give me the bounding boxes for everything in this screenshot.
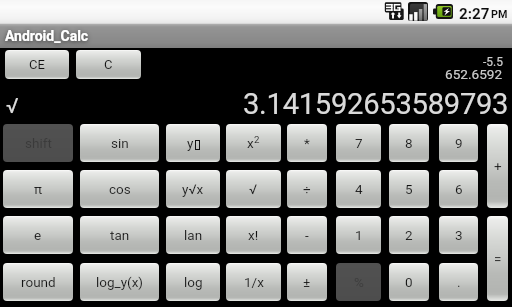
button[interactable]: lan xyxy=(166,216,220,254)
staticText: y√x xyxy=(182,181,204,197)
button[interactable]: y√x xyxy=(166,170,220,208)
button[interactable]: + xyxy=(487,124,508,208)
staticText: - xyxy=(305,227,309,243)
button[interactable]: √ xyxy=(226,170,281,208)
button[interactable]: x! xyxy=(226,216,281,254)
button[interactable]: C xyxy=(76,50,141,79)
staticText: 6 xyxy=(455,181,463,197)
button[interactable]: 9 xyxy=(439,124,478,162)
button[interactable]: ± xyxy=(287,263,327,301)
button[interactable]: 6 xyxy=(439,170,478,208)
button[interactable]: 4 xyxy=(336,170,381,208)
staticText: 3.141592653589793 xyxy=(243,87,509,121)
staticText: e xyxy=(34,227,42,243)
button[interactable]: sin xyxy=(80,124,159,162)
button[interactable]: 1 xyxy=(336,216,381,254)
button[interactable]: 8 xyxy=(389,124,429,162)
staticText: PM xyxy=(491,8,508,21)
staticText: x! xyxy=(248,227,259,243)
staticText: + xyxy=(494,158,502,174)
button[interactable]: y xyxy=(166,124,220,162)
staticText: y xyxy=(187,135,194,151)
other: Signal strength xyxy=(408,2,428,21)
staticText: . xyxy=(457,274,461,290)
button[interactable]: log xyxy=(166,263,220,301)
other: Battery charging xyxy=(433,4,453,19)
button[interactable]: - xyxy=(287,216,327,254)
staticText: lan xyxy=(184,227,203,243)
button[interactable]: 1/x xyxy=(226,263,281,301)
staticText: 1 xyxy=(355,227,363,243)
button[interactable]: 2 xyxy=(389,216,429,254)
button[interactable]: 5 xyxy=(389,170,429,208)
button[interactable]: round xyxy=(3,263,73,301)
staticText: = xyxy=(494,251,502,267)
staticText: * xyxy=(304,135,310,151)
staticText: 7 xyxy=(355,135,363,151)
staticText: 2 xyxy=(254,134,260,145)
button[interactable]: 7 xyxy=(336,124,381,162)
button[interactable]: cos xyxy=(80,170,159,208)
staticText: C xyxy=(104,57,113,72)
staticText: % xyxy=(354,274,364,290)
staticText: -5.5 xyxy=(483,55,503,69)
staticText: tan xyxy=(110,227,130,243)
button[interactable]: x xyxy=(226,124,281,162)
staticText: cos xyxy=(109,181,131,197)
staticText: 1/x xyxy=(244,274,264,290)
button[interactable]: CE xyxy=(5,50,69,79)
staticText: log_y(x) xyxy=(96,274,144,290)
staticText: 4 xyxy=(355,181,363,197)
staticText: Android_Calc xyxy=(5,28,89,44)
button[interactable]: e xyxy=(3,216,73,254)
staticText: sin xyxy=(111,135,129,151)
staticText: CE xyxy=(29,57,45,72)
button[interactable]: π xyxy=(3,170,73,208)
staticText: 2 xyxy=(405,227,413,243)
button[interactable]: shift xyxy=(3,124,73,162)
staticText: 5 xyxy=(405,181,413,197)
staticText: 0 xyxy=(405,274,413,290)
button[interactable]: ÷ xyxy=(287,170,327,208)
button[interactable]: * xyxy=(287,124,327,162)
staticText: x xyxy=(247,135,254,151)
staticText: 2:27 xyxy=(459,5,490,23)
other: 3G mobile data xyxy=(384,1,404,20)
staticText: round xyxy=(21,274,56,290)
button[interactable]: tan xyxy=(80,216,159,254)
staticText: π xyxy=(34,181,43,197)
staticText: 652.6592 xyxy=(445,66,503,82)
staticText: 8 xyxy=(405,135,413,151)
staticText: 3 xyxy=(455,227,463,243)
staticText: √ xyxy=(6,94,19,119)
button[interactable]: log_y(x) xyxy=(80,263,159,301)
staticText: log xyxy=(184,274,203,290)
staticText: √ xyxy=(249,181,258,197)
button[interactable]: 3 xyxy=(439,216,478,254)
staticText: ÷ xyxy=(303,181,311,197)
staticText: shift xyxy=(25,135,52,151)
staticText: ± xyxy=(303,274,311,290)
button[interactable]: % xyxy=(336,263,381,301)
button[interactable]: = xyxy=(487,216,508,301)
button[interactable]: 0 xyxy=(389,263,429,301)
staticText: 9 xyxy=(455,135,463,151)
button[interactable]: . xyxy=(439,263,478,301)
